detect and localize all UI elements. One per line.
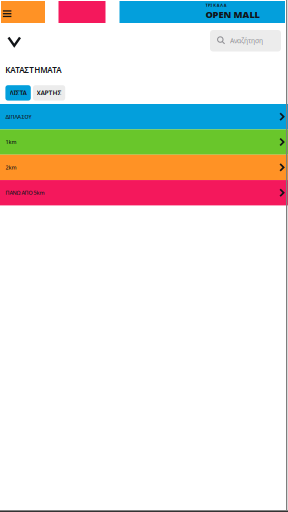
staticText: ΛΙΣΤΑ (10, 88, 27, 97)
button[interactable]: ΧΑΡΤΗΣ (33, 85, 65, 101)
button[interactable]: ΛΙΣΤΑ (5, 85, 31, 101)
staticText: Αναζήτηση (230, 36, 263, 45)
button[interactable]: 2km (0, 155, 288, 180)
button[interactable]: Collapse (0, 0, 21, 47)
staticText: ΤΡΙΚΑΛΑ (205, 3, 227, 8)
staticText: ΧΑΡΤΗΣ (37, 88, 62, 97)
button[interactable]: Trikala Open Mall (119, 1, 285, 23)
staticText: 2km (5, 164, 16, 171)
button[interactable]: ΠΑΝΩ ΑΠΟ 5km (0, 180, 288, 205)
button[interactable]: ΔΙΠΛΑ ΣΟΥ (0, 104, 288, 129)
staticText: ΚΑΤΑΣΤΗΜΑΤΑ (5, 64, 61, 75)
staticText: ΠΑΝΩ ΑΠΟ 5km (5, 189, 44, 196)
staticText: ΔΙΠΛΑ ΣΟΥ (5, 113, 31, 120)
staticText: 1km (5, 138, 16, 146)
button[interactable]: Search (0, 0, 71, 21)
button[interactable]: Menu (1, 1, 45, 23)
button[interactable]: Offers (58, 1, 105, 23)
button[interactable]: 1km (0, 129, 288, 155)
staticText: OPEN MALL (205, 8, 259, 20)
